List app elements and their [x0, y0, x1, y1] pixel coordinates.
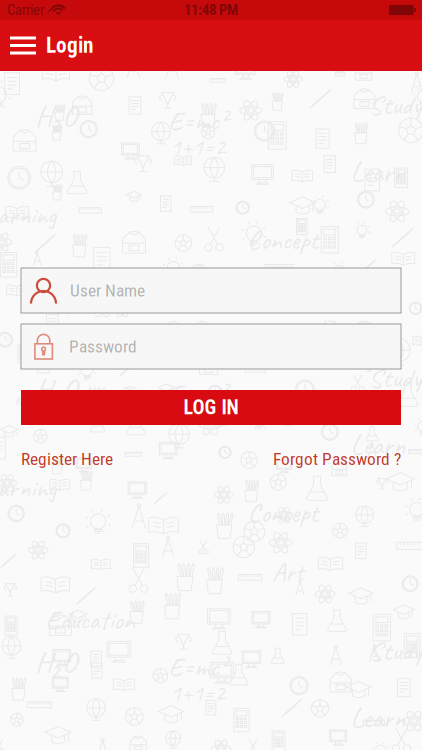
staticText: Carrier: [7, 1, 44, 19]
staticText: Education: [45, 330, 134, 364]
staticText: Register Here: [21, 449, 113, 469]
staticText: H₂O: [35, 643, 77, 681]
staticText: Learn: [350, 700, 405, 736]
staticText: Study: [368, 88, 421, 122]
staticText: Learn: [350, 154, 405, 190]
staticText: Password: [69, 336, 137, 357]
staticText: H₂O: [35, 370, 77, 408]
staticText: Study: [368, 361, 421, 395]
button[interactable]: Forgot Password ?: [273, 449, 401, 469]
staticText: Concept: [247, 223, 318, 257]
staticText: earning: [0, 198, 56, 232]
staticText: E=mc²: [168, 377, 227, 411]
staticText: Learn: [350, 427, 405, 463]
staticText: Forgot Password ?: [273, 449, 401, 469]
staticText: Art: [272, 282, 304, 316]
staticText: 1+1=2: [170, 678, 225, 708]
staticText: LOG IN: [183, 396, 238, 419]
staticText: E=mc²: [168, 650, 227, 684]
button[interactable]: Register Here: [21, 449, 113, 469]
staticText: E=mc²: [168, 104, 227, 138]
button[interactable]: Menu: [0, 20, 46, 71]
staticText: 11:48 PM: [184, 1, 238, 19]
staticText: Art: [272, 555, 304, 589]
button[interactable]: LOG IN: [21, 390, 401, 425]
staticText: Login: [46, 33, 94, 58]
staticText: H₂O: [35, 97, 77, 135]
staticText: 1+1=2: [170, 405, 225, 435]
staticText: User Name: [70, 280, 145, 301]
staticText: Education: [45, 603, 134, 637]
staticText: Study: [368, 634, 421, 668]
staticText: 1+1=2: [170, 132, 225, 162]
staticText: Concept: [247, 496, 318, 530]
staticText: earning: [0, 471, 56, 505]
